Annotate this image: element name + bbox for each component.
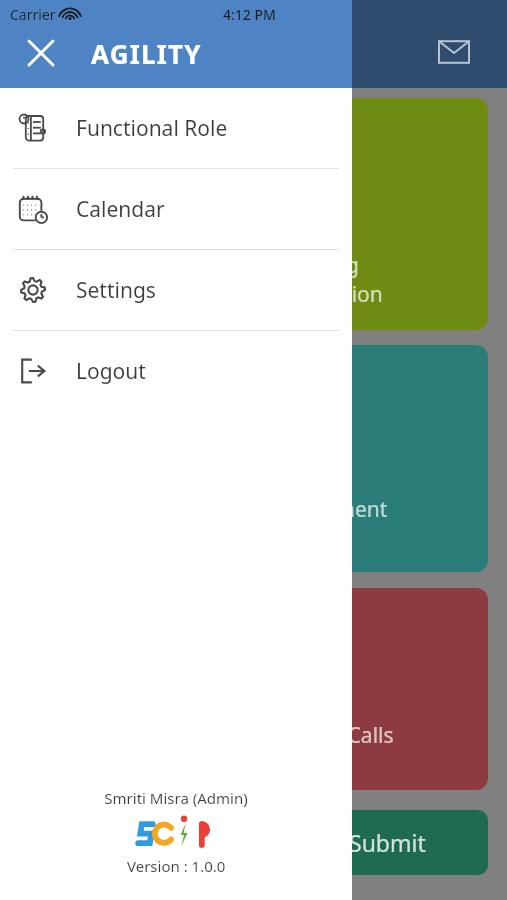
staticText: AGILITY [91, 36, 202, 71]
button[interactable]: Submit [286, 810, 488, 875]
staticText: Portfolio Calls [257, 721, 394, 750]
button[interactable]: Functional Role [0, 88, 352, 168]
button[interactable]: Messages [434, 32, 474, 72]
staticText: Smriti Misra (Admin) [104, 788, 248, 808]
staticText: Carrier [10, 5, 56, 24]
staticText: Commitment [257, 495, 388, 524]
button[interactable]: Upcoming Presentation [243, 98, 488, 330]
staticText: Settings [76, 276, 156, 305]
button[interactable]: Calendar [0, 169, 352, 249]
button[interactable]: Close [20, 32, 62, 74]
staticText: Upcoming Presentation [257, 251, 383, 309]
staticText: Version : 1.0.0 [127, 856, 226, 876]
staticText: 4:12 PM [223, 5, 276, 24]
staticText: Functional Role [76, 114, 228, 143]
staticText: Submit [349, 827, 426, 858]
staticText: Logout [76, 357, 146, 386]
button[interactable]: Portfolio Calls [243, 588, 488, 790]
staticText: Calendar [76, 195, 165, 224]
button[interactable]: Settings [0, 250, 352, 330]
button[interactable]: Commitment [243, 345, 488, 572]
button[interactable]: Logout [0, 331, 352, 411]
